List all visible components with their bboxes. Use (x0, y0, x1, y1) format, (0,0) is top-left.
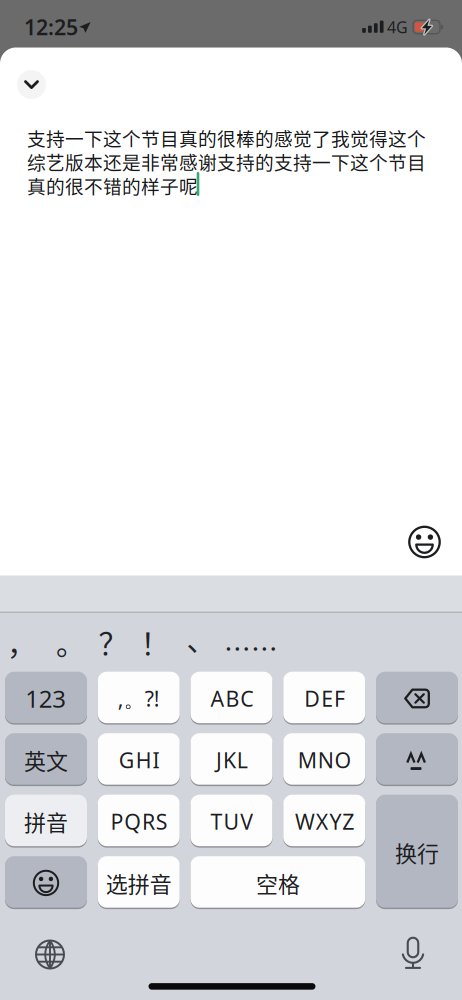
staticText: …… (224, 628, 278, 666)
staticText: 。 (56, 621, 85, 663)
staticText: ,。?! (118, 684, 160, 713)
button[interactable]: Emoji keyboard (5, 856, 87, 910)
button[interactable]: 。 (56, 621, 85, 663)
staticText: 123 (25, 682, 66, 714)
staticText: DEF (304, 684, 345, 713)
button[interactable]: ？ (98, 621, 127, 663)
staticText: ？ (98, 621, 127, 663)
button[interactable]: 拼音 (5, 795, 87, 848)
staticText: 12:25 (24, 13, 78, 41)
staticText: WXYZ (295, 807, 354, 836)
button[interactable]: MNO (283, 733, 365, 787)
button[interactable]: Dictate (400, 936, 426, 970)
button[interactable]: ， (7, 621, 36, 663)
button[interactable]: 选拼音 (98, 856, 180, 910)
button[interactable]: Emoji (407, 525, 441, 559)
button[interactable]: 英文 (5, 733, 87, 787)
staticText: 换行 (395, 836, 439, 868)
staticText: JKL (216, 746, 248, 774)
button[interactable]: Separator (376, 733, 458, 787)
staticText: TUV (211, 807, 253, 836)
button[interactable]: TUV (190, 795, 272, 848)
button[interactable]: Next keyboard (33, 937, 67, 971)
staticText: 真的很不错的样子呢 (27, 172, 198, 199)
button[interactable]: JKL (190, 733, 272, 787)
staticText: MNO (298, 746, 351, 774)
button[interactable]: GHI (98, 733, 180, 787)
staticText: 英文 (24, 744, 68, 776)
button[interactable]: …… (224, 628, 278, 666)
staticText: PQRS (110, 807, 168, 836)
button[interactable]: 123 (5, 672, 87, 725)
staticText: GHI (119, 746, 159, 774)
staticText: 4G (387, 16, 408, 38)
button[interactable]: ,。?! (98, 672, 180, 725)
staticText: ！ (140, 621, 169, 663)
staticText: 综艺版本还是非常感谢支持的支持一下这个节目 (27, 148, 426, 175)
staticText: 、 (186, 617, 215, 659)
button[interactable]: WXYZ (283, 795, 365, 848)
button[interactable]: ABC (190, 672, 272, 725)
button[interactable]: DEF (283, 672, 365, 725)
staticText: 拼音 (24, 805, 68, 837)
button[interactable]: ！ (140, 621, 169, 663)
button[interactable]: 换行 (376, 795, 458, 910)
staticText: 支持一下这个节目真的很棒的感觉了我觉得这个 (27, 124, 426, 151)
button[interactable]: PQRS (98, 795, 180, 848)
button[interactable]: 空格 (190, 856, 365, 910)
staticText: 选拼音 (106, 867, 172, 899)
staticText: ABC (211, 684, 253, 713)
staticText: ， (7, 621, 36, 663)
button[interactable]: Delete (376, 672, 458, 725)
button[interactable]: 、 (186, 617, 215, 659)
staticText: 空格 (256, 867, 300, 899)
button[interactable]: Dismiss (17, 70, 46, 99)
